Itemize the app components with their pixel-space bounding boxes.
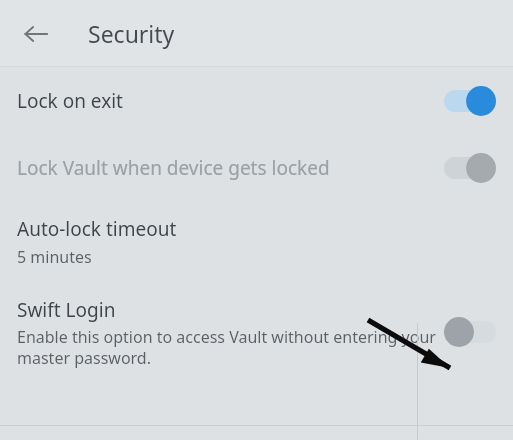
button[interactable]: Swift Login [0, 281, 513, 440]
button[interactable]: Navigate back [14, 12, 58, 56]
staticText: Swift Login [17, 297, 116, 323]
staticText: 5 minutes [17, 246, 92, 268]
button[interactable]: Lock Vault when device gets locked [0, 134, 513, 202]
staticText: Auto-lock timeout [17, 216, 177, 242]
staticText: Enable this option to access Vault witho… [17, 326, 440, 369]
staticText: Lock on exit [17, 88, 444, 114]
button[interactable]: Auto-lock timeout [0, 202, 513, 281]
staticText: Security [88, 18, 175, 49]
button[interactable]: Lock on exit [0, 67, 513, 134]
staticText: Lock Vault when device gets locked [17, 155, 444, 181]
